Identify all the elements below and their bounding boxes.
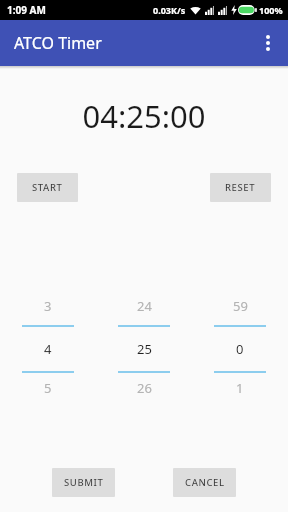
- staticText: 25: [137, 340, 152, 358]
- button[interactable]: 24: [96, 287, 192, 403]
- button[interactable]: 59: [192, 287, 288, 403]
- staticText: 24: [137, 297, 152, 315]
- staticText: ATCO Timer: [14, 32, 102, 54]
- staticText: 3: [44, 297, 52, 315]
- staticText: 100%: [259, 4, 283, 16]
- staticText: RESET: [225, 181, 256, 194]
- button[interactable]: More options: [248, 20, 288, 66]
- staticText: 4: [44, 340, 52, 358]
- button[interactable]: START: [17, 173, 78, 202]
- staticText: 59: [233, 297, 248, 315]
- staticText: START: [32, 181, 63, 194]
- staticText: 04:25:00: [0, 95, 288, 137]
- button[interactable]: 3: [0, 287, 96, 403]
- button[interactable]: RESET: [210, 173, 271, 202]
- staticText: 26: [137, 379, 152, 397]
- staticText: 1: [236, 379, 244, 397]
- staticText: 1:09 AM: [7, 3, 46, 17]
- staticText: SUBMIT: [64, 476, 104, 489]
- staticText: 0: [236, 340, 244, 358]
- staticText: CANCEL: [185, 476, 225, 489]
- staticText: 5: [44, 379, 52, 397]
- staticText: 0.03K/s: [153, 4, 186, 16]
- button[interactable]: CANCEL: [173, 468, 236, 497]
- button[interactable]: SUBMIT: [52, 468, 115, 497]
